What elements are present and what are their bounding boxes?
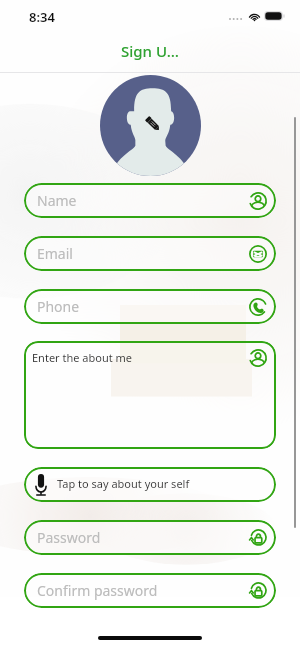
button[interactable]: Password [24,520,276,555]
button[interactable]: Phone [24,289,276,324]
button[interactable]: Name [24,183,276,218]
staticText: Enter the about me [32,350,133,365]
staticText: Email [37,244,73,263]
button[interactable]: Tap to say about your self [24,467,276,502]
staticText: Password [37,528,101,547]
staticText: 8:34 [29,8,55,26]
staticText: Sign U… [121,41,179,61]
staticText: Tap to say about your self [57,476,190,491]
staticText: Name [37,191,77,210]
button[interactable]: Confirm password [24,573,276,608]
button[interactable]: Change profile photo [100,75,201,176]
button[interactable]: Email [24,236,276,271]
staticText: Confirm password [37,581,158,600]
staticText: Phone [37,297,80,316]
button[interactable]: Enter the about me [24,341,276,449]
